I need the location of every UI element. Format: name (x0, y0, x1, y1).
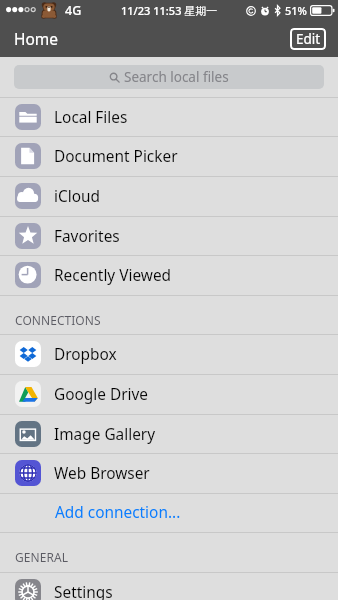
button[interactable]: Google Drive (0, 374, 338, 414)
staticText: iCloud (54, 186, 100, 207)
staticText: Web Browser (54, 463, 150, 484)
staticText: 51% (285, 3, 307, 18)
button[interactable]: Local Files (0, 97, 338, 137)
button[interactable]: Edit (290, 28, 326, 50)
staticText: Home (14, 28, 59, 49)
staticText: Dropbox (54, 344, 117, 365)
staticText: Edit (296, 30, 321, 48)
staticText: Image Gallery (54, 424, 156, 445)
staticText: CONNECTIONS (15, 312, 101, 328)
button[interactable]: iCloud (0, 176, 338, 216)
button[interactable]: Add connection... (0, 493, 338, 533)
button[interactable]: Favorites (0, 216, 338, 256)
button[interactable]: Search local files (14, 65, 324, 89)
staticText: GENERAL (15, 549, 68, 565)
staticText: Search local files (124, 68, 229, 86)
staticText: 11/23 11:53 星期一 (121, 3, 218, 18)
staticText: Settings (54, 582, 113, 600)
staticText: 4G (65, 2, 82, 19)
staticText: Favorites (54, 226, 120, 247)
staticText: Document Picker (54, 146, 178, 167)
button[interactable]: Image Gallery (0, 414, 338, 454)
staticText: Local Files (54, 107, 128, 128)
button[interactable]: Dropbox (0, 334, 338, 374)
button[interactable]: Recently Viewed (0, 255, 338, 295)
staticText: Recently Viewed (54, 265, 172, 286)
button[interactable]: Document Picker (0, 136, 338, 176)
staticText: Add connection... (55, 502, 181, 523)
button[interactable]: Web Browser (0, 453, 338, 493)
button[interactable]: Settings (0, 572, 338, 600)
staticText: Google Drive (54, 384, 149, 405)
